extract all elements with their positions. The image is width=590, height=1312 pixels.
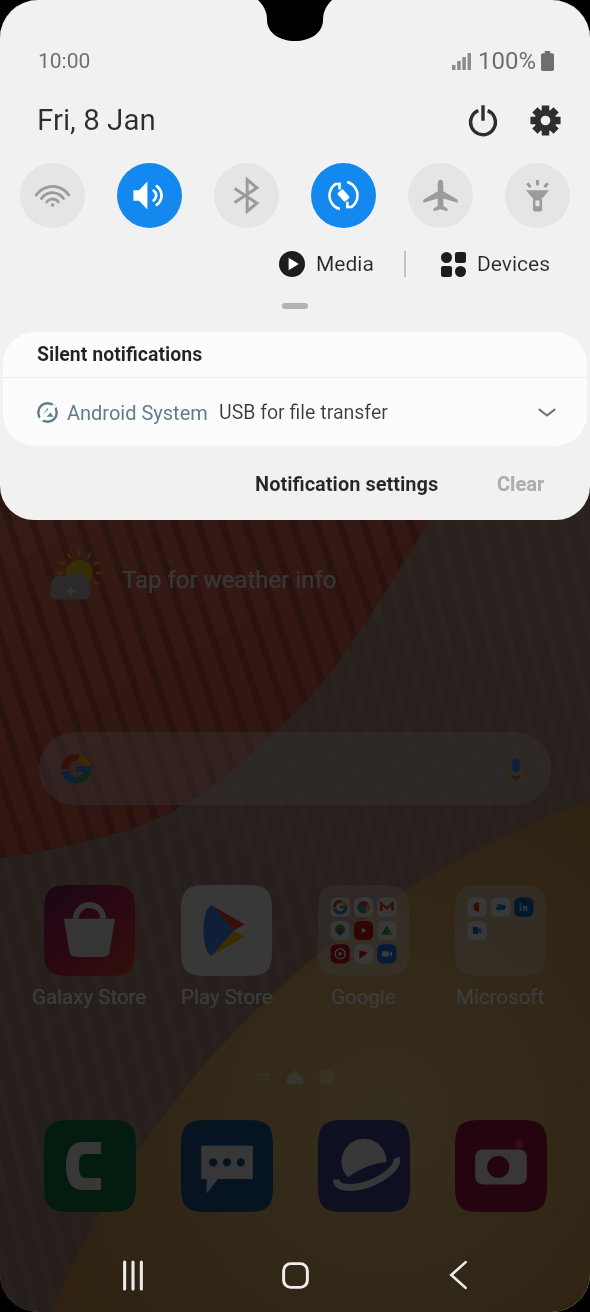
staticText: Tap for weather info [122,566,337,594]
staticText: Notification settings [255,472,439,495]
button[interactable]: Wi-Fi [20,163,85,228]
staticText: Galaxy Store [32,985,147,1009]
staticText: 100% [478,47,537,75]
button[interactable]: Microsoft [432,885,569,1009]
button[interactable] [39,732,551,805]
staticText: USB for file transfer [219,401,388,424]
staticText: Media [316,252,374,277]
staticText: Clear [497,472,545,495]
button[interactable]: Internet [295,1120,432,1212]
button[interactable]: Auto rotate [311,163,376,228]
button[interactable]: Media [269,245,384,283]
staticText: Microsoft [456,985,545,1009]
button[interactable]: Camera [432,1120,569,1212]
staticText: Silent notifications [37,343,203,366]
staticText: Fri, 8 Jan [37,103,156,138]
staticText: Play Store [181,985,273,1009]
button[interactable]: Tap for weather info [40,545,337,615]
button[interactable]: Google [295,885,432,1009]
button[interactable]: Bluetooth [214,163,279,228]
button[interactable]: Notification settings [243,464,451,503]
staticText: 10:00 [38,49,91,74]
staticText: Google [331,985,396,1009]
staticText: Android System [67,401,208,424]
button[interactable]: Phone [21,1120,158,1212]
button[interactable]: Back [428,1245,488,1305]
button[interactable]: Airplane mode [408,163,473,228]
button[interactable]: Play Store [158,885,295,1009]
button[interactable]: Messages [158,1120,295,1212]
staticText: Devices [477,252,551,277]
button[interactable]: Recents [103,1245,163,1305]
button[interactable]: Devices [431,246,561,283]
button[interactable]: Clear [485,464,557,503]
button[interactable]: Flashlight [505,163,570,228]
button[interactable]: Home [265,1245,325,1305]
button[interactable]: Power off [458,95,508,145]
button[interactable]: Galaxy Store [21,885,158,1009]
button[interactable]: Sound [117,163,182,228]
button[interactable]: Settings [520,95,570,145]
button[interactable]: Android System [3,378,587,446]
